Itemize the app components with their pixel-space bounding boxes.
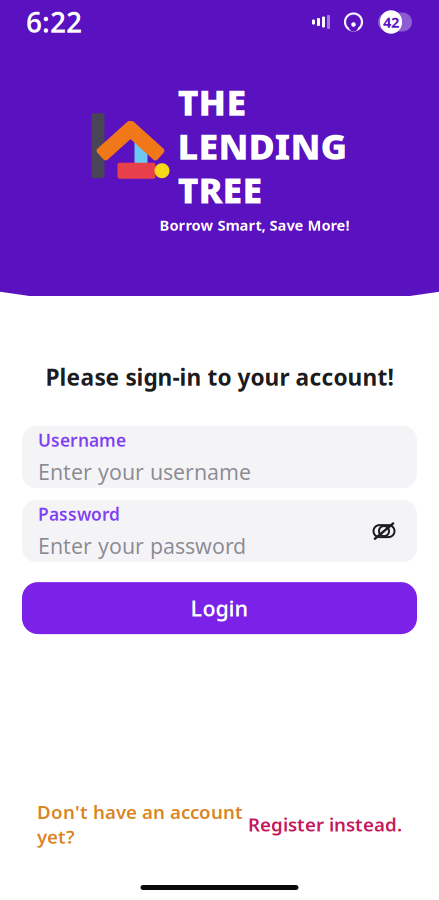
staticText: Username bbox=[38, 428, 126, 451]
staticText: TREE bbox=[177, 166, 262, 213]
staticText: THE bbox=[177, 78, 246, 126]
staticText: 6:22 bbox=[26, 3, 82, 41]
button[interactable]: Login bbox=[22, 582, 417, 634]
staticText: Register instead. bbox=[248, 812, 402, 837]
staticText: Login bbox=[190, 594, 248, 622]
staticText: Password bbox=[38, 502, 120, 525]
staticText: Please sign-in to your account! bbox=[45, 362, 393, 392]
staticText: LENDING bbox=[177, 122, 347, 170]
staticText: 42 bbox=[383, 12, 399, 32]
staticText: Enter your username bbox=[38, 457, 251, 486]
button[interactable]: Show password bbox=[367, 514, 401, 548]
staticText: Enter your password bbox=[38, 531, 246, 560]
staticText: Don't have an account yet? bbox=[37, 799, 243, 849]
staticText: Borrow Smart, Save More! bbox=[159, 215, 349, 235]
button[interactable]: Don't have an account yet? bbox=[17, 791, 422, 857]
